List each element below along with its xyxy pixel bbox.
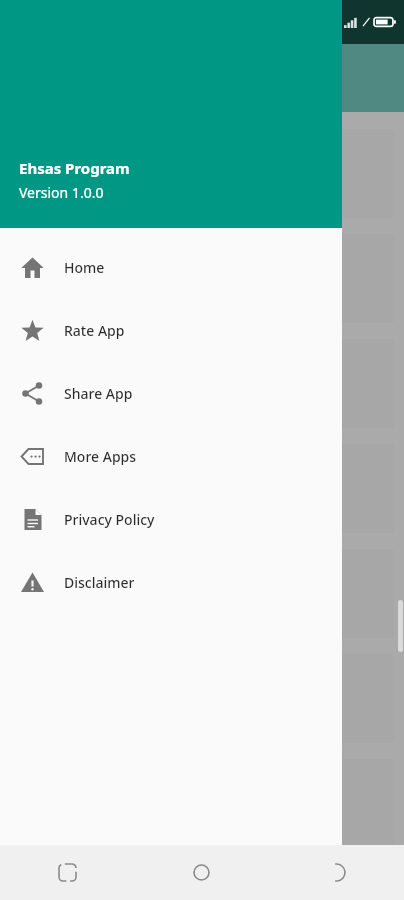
- button[interactable]: Recent apps: [0, 864, 134, 881]
- staticText: More Apps: [64, 447, 137, 466]
- button[interactable]: [10, 654, 394, 743]
- button[interactable]: Share App: [0, 362, 342, 425]
- button[interactable]: Disclaimer: [0, 551, 342, 614]
- button[interactable]: [10, 129, 394, 218]
- staticText: Disclaimer: [64, 573, 135, 592]
- staticText: Home: [64, 258, 105, 277]
- button[interactable]: [10, 234, 394, 323]
- button[interactable]: Home: [0, 236, 342, 299]
- button[interactable]: [10, 444, 394, 533]
- button[interactable]: More Apps: [0, 425, 342, 488]
- staticText: Version 1.0.0: [19, 183, 104, 202]
- button[interactable]: Ehsas Program: [0, 0, 342, 228]
- button[interactable]: Rate App: [0, 299, 342, 362]
- button[interactable]: [10, 339, 394, 428]
- staticText: Privacy Policy: [64, 510, 155, 529]
- staticText: Ehsas Program: [19, 158, 130, 178]
- button[interactable]: Home: [134, 864, 269, 881]
- button[interactable]: [10, 549, 394, 638]
- button[interactable]: Back: [269, 864, 404, 881]
- button[interactable]: [10, 864, 394, 900]
- staticText: Rate App: [64, 321, 125, 340]
- button[interactable]: Privacy Policy: [0, 488, 342, 551]
- staticText: Share App: [64, 384, 133, 403]
- button[interactable]: [10, 759, 394, 848]
